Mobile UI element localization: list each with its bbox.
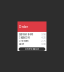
staticText: Espresso Blend	[19, 33, 33, 36]
button[interactable]: Espresso Blend	[17, 33, 46, 36]
button[interactable]: Cappuccino	[17, 36, 46, 39]
staticText: 4.25	[41, 36, 45, 39]
staticText: Checkout	[25, 47, 39, 51]
button[interactable]: Croissant	[17, 39, 46, 42]
staticText: Juice	[19, 43, 24, 45]
button[interactable]: Juice	[17, 42, 46, 46]
staticText: Cappuccino	[19, 36, 30, 39]
staticText: Croissant	[19, 39, 29, 42]
staticText: 3.50	[41, 33, 45, 36]
staticText: 3.00	[41, 43, 45, 45]
staticText: 2.75	[41, 39, 45, 42]
staticText: Order	[19, 25, 28, 29]
button[interactable]: Checkout	[19, 47, 45, 51]
